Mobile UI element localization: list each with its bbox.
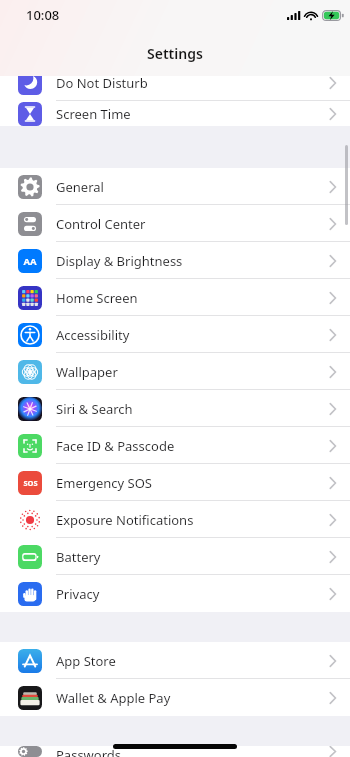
button[interactable]: Privacy [0, 575, 350, 612]
staticText: Passwords [56, 746, 329, 757]
button[interactable]: Siri & Search [0, 390, 350, 427]
button[interactable]: General [0, 168, 350, 205]
button[interactable]: Battery [0, 538, 350, 575]
staticText: Battery [56, 548, 329, 566]
staticText: Display & Brightness [56, 252, 329, 270]
staticText: Control Center [56, 215, 329, 233]
staticText: Home Screen [56, 289, 329, 307]
staticText: Wallpaper [56, 363, 329, 381]
button[interactable]: Do Not Disturb [0, 76, 350, 101]
button[interactable]: Exposure Notifications [0, 501, 350, 538]
button[interactable]: Passwords [0, 746, 350, 757]
staticText: Emergency SOS [56, 474, 329, 492]
staticText: AA [23, 255, 37, 268]
staticText: General [56, 178, 329, 196]
staticText: Do Not Disturb [56, 76, 329, 92]
staticText: Exposure Notifications [56, 511, 329, 529]
button[interactable]: Accessibility [0, 316, 350, 353]
staticText: Wallet & Apple Pay [56, 689, 329, 707]
button[interactable]: Screen Time [0, 101, 350, 126]
button[interactable]: App Store [0, 642, 350, 679]
staticText: Siri & Search [56, 400, 329, 418]
staticText: Privacy [56, 585, 329, 603]
staticText: App Store [56, 652, 329, 670]
staticText: 10:08 [26, 6, 60, 24]
staticText: Accessibility [56, 326, 329, 344]
button[interactable]: AA [0, 242, 350, 279]
button[interactable]: SOS [0, 464, 350, 501]
button[interactable]: Wallet & Apple Pay [0, 679, 350, 716]
other: Cellular signal [287, 11, 301, 20]
button[interactable]: Face ID & Passcode [0, 427, 350, 464]
staticText: SOS [23, 478, 38, 488]
button[interactable]: Home Screen [0, 279, 350, 316]
other: Wi-Fi [305, 11, 317, 20]
staticText: Settings [147, 44, 203, 63]
staticText: Face ID & Passcode [56, 437, 329, 455]
other: Battery charging [322, 10, 344, 21]
staticText: Screen Time [56, 105, 329, 123]
button[interactable]: Wallpaper [0, 353, 350, 390]
button[interactable]: Control Center [0, 205, 350, 242]
